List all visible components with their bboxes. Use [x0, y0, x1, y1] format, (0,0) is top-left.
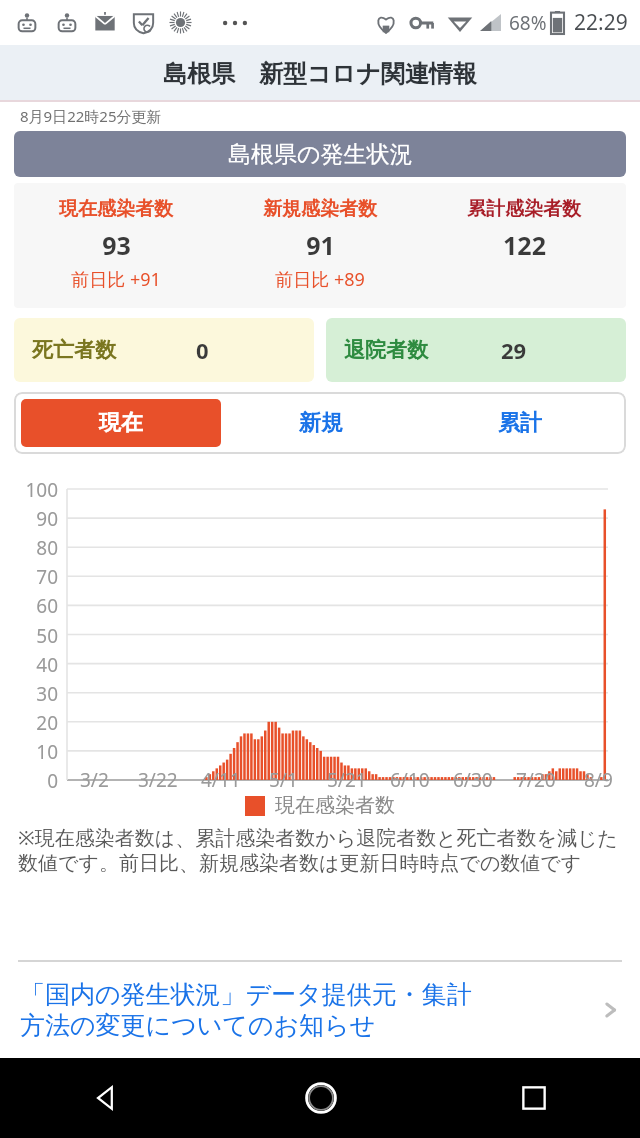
staticText: 6/30 — [453, 767, 493, 793]
staticText: 3/22 — [138, 767, 178, 793]
staticText: 122 — [503, 228, 546, 262]
staticText: 現在 — [99, 409, 143, 437]
staticText: 100 — [0, 477, 58, 503]
staticText: 50 — [0, 623, 58, 649]
staticText: 方法の変更についてのお知らせ — [20, 1010, 376, 1041]
button[interactable]: 「国内の発生状況」データ提供元・集計 — [0, 962, 640, 1058]
staticText: 60 — [0, 593, 58, 619]
staticText: 8月9日22時25分更新 — [20, 106, 162, 126]
staticText: 7/20 — [516, 767, 556, 793]
button[interactable]: 現在 — [21, 399, 221, 447]
button[interactable]: 島根県の発生状況 — [14, 131, 626, 177]
staticText: 0 — [196, 335, 209, 365]
other: Open notice — [596, 995, 626, 1025]
staticText: 累計感染者数 — [467, 197, 581, 221]
staticText: 4/11 — [201, 767, 241, 793]
staticText: 6/10 — [390, 767, 430, 793]
staticText: 90 — [0, 506, 58, 532]
staticText: 島根県 新型コロナ関連情報 — [163, 56, 477, 89]
staticText: 累計 — [498, 409, 542, 437]
button[interactable]: 死亡者数 — [14, 318, 314, 382]
staticText: 80 — [0, 535, 58, 561]
staticText: 現在感染者数 — [59, 197, 173, 221]
button[interactable]: 退院者数 — [326, 318, 626, 382]
staticText: 68% — [509, 10, 547, 36]
staticText: 数値です。前日比、新規感染者数は更新日時時点での数値です — [18, 851, 582, 876]
staticText: 22:29 — [574, 8, 628, 37]
staticText: 20 — [0, 710, 58, 736]
staticText: 「国内の発生状況」データ提供元・集計 — [20, 979, 472, 1010]
staticText: 現在感染者数 — [275, 793, 395, 818]
button[interactable]: 新規 — [221, 399, 420, 447]
staticText: 0 — [0, 768, 58, 794]
button[interactable]: Home — [214, 1058, 427, 1138]
staticText: 5/21 — [327, 767, 367, 793]
button[interactable]: Recent apps — [427, 1058, 640, 1138]
staticText: 新規感染者数 — [263, 197, 377, 221]
staticText: 3/2 — [80, 767, 109, 793]
staticText: 70 — [0, 564, 58, 590]
staticText: 93 — [102, 228, 131, 262]
staticText: 8/9 — [584, 767, 613, 793]
staticText: 5/1 — [269, 767, 298, 793]
staticText: 新規 — [299, 409, 343, 437]
staticText: 91 — [306, 228, 335, 262]
staticText: 前日比 +89 — [275, 267, 365, 292]
staticText: 死亡者数 — [32, 337, 116, 363]
staticText: 10 — [0, 739, 58, 765]
button[interactable]: Back — [0, 1058, 214, 1138]
staticText: 退院者数 — [344, 337, 428, 363]
staticText: 島根県の発生状況 — [228, 140, 413, 169]
staticText: ※現在感染者数は、累計感染者数から退院者数と死亡者数を減じた — [18, 824, 619, 851]
button[interactable]: 累計 — [420, 399, 619, 447]
staticText: 40 — [0, 652, 58, 678]
staticText: 前日比 +91 — [71, 267, 161, 292]
staticText: 29 — [501, 335, 527, 365]
staticText: 30 — [0, 681, 58, 707]
